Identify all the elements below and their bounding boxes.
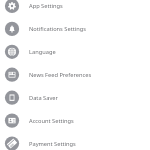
button[interactable]: Payment Settings xyxy=(0,132,150,150)
staticText: App Settings xyxy=(29,2,63,10)
staticText: Language xyxy=(29,48,56,56)
staticText: Data Saver xyxy=(29,94,58,102)
button[interactable]: Account Settings xyxy=(0,109,150,132)
staticText: Account Settings xyxy=(29,117,74,125)
staticText: Notifications Settings xyxy=(29,25,86,33)
button[interactable]: Data Saver xyxy=(0,86,150,109)
button[interactable]: Language xyxy=(0,40,150,63)
staticText: Payment Settings xyxy=(29,140,76,148)
staticText: News Feed Preferences xyxy=(29,71,92,79)
button[interactable]: Notifications Settings xyxy=(0,17,150,40)
button[interactable]: App Settings xyxy=(0,0,150,17)
button[interactable]: News Feed Preferences xyxy=(0,63,150,86)
